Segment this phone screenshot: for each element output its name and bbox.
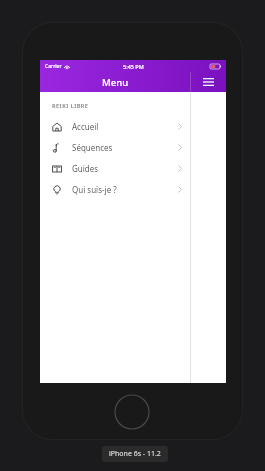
staticText: iPhone 6s - 11.2 — [109, 449, 161, 459]
staticText: Je l'ai conçue pour vous — [92, 146, 175, 155]
button[interactable]: Séquences — [40, 137, 190, 158]
staticText: 5:45 PM — [123, 63, 144, 70]
staticText: Accueil — [72, 121, 178, 132]
staticText: REIKI LIBRE — [52, 102, 89, 109]
staticText: Menu — [102, 76, 129, 89]
staticText: Séquences — [72, 142, 178, 153]
staticText: Guides — [72, 163, 178, 174]
staticText: Qui suis-je ? — [72, 184, 178, 195]
button[interactable]: Guides — [40, 158, 190, 179]
staticText: Carrier — [45, 63, 62, 70]
button[interactable]: Open menu — [195, 72, 221, 92]
staticText: sur fond musical doux que — [86, 181, 180, 190]
staticText: vous offre l'application — [93, 190, 173, 199]
button[interactable]: Accueil — [40, 116, 190, 137]
button[interactable]: Qui suis-je ? — [40, 179, 190, 200]
